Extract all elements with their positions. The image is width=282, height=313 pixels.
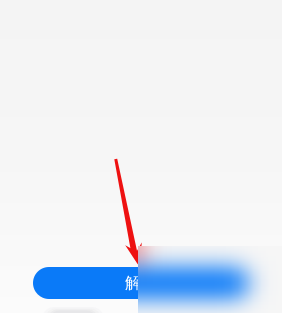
staticText: 解绑 bbox=[125, 273, 157, 293]
button[interactable]: 解绑 bbox=[33, 267, 249, 299]
